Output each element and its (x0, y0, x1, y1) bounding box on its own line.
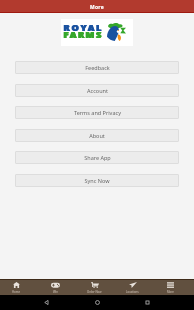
staticText: FARMS (64, 28, 104, 40)
staticText: Locations (126, 290, 139, 294)
staticText: Share App (84, 154, 111, 161)
staticText: Home (12, 290, 20, 294)
button[interactable]: Order Now (75, 280, 113, 295)
staticText: ROYAL (64, 21, 104, 33)
staticText: Terms and Privacy (74, 109, 121, 116)
staticText: FARMS (64, 28, 104, 40)
button[interactable]: Win (36, 280, 74, 295)
staticText: Order Now (87, 290, 102, 294)
button[interactable]: Terms and Privacy (15, 106, 179, 119)
staticText: Win (53, 290, 59, 294)
button[interactable]: Sync Now (15, 174, 179, 187)
staticText: ROYAL (63, 21, 103, 33)
staticText: More (167, 290, 174, 294)
staticText: Sync Now (84, 177, 110, 184)
staticText: Feedback (85, 64, 110, 71)
staticText: FARMS (63, 28, 103, 40)
button[interactable]: About (15, 129, 179, 142)
button[interactable]: Feedback (15, 61, 179, 74)
button[interactable]: Locations (113, 280, 151, 295)
button[interactable]: More (151, 280, 189, 295)
button[interactable]: Share App (15, 151, 179, 164)
button[interactable]: Account (15, 84, 179, 97)
staticText: More (90, 4, 104, 11)
staticText: Account (87, 87, 108, 94)
button[interactable]: Home (0, 280, 35, 295)
staticText: About (89, 132, 105, 139)
staticText: ROYAL (64, 21, 104, 33)
